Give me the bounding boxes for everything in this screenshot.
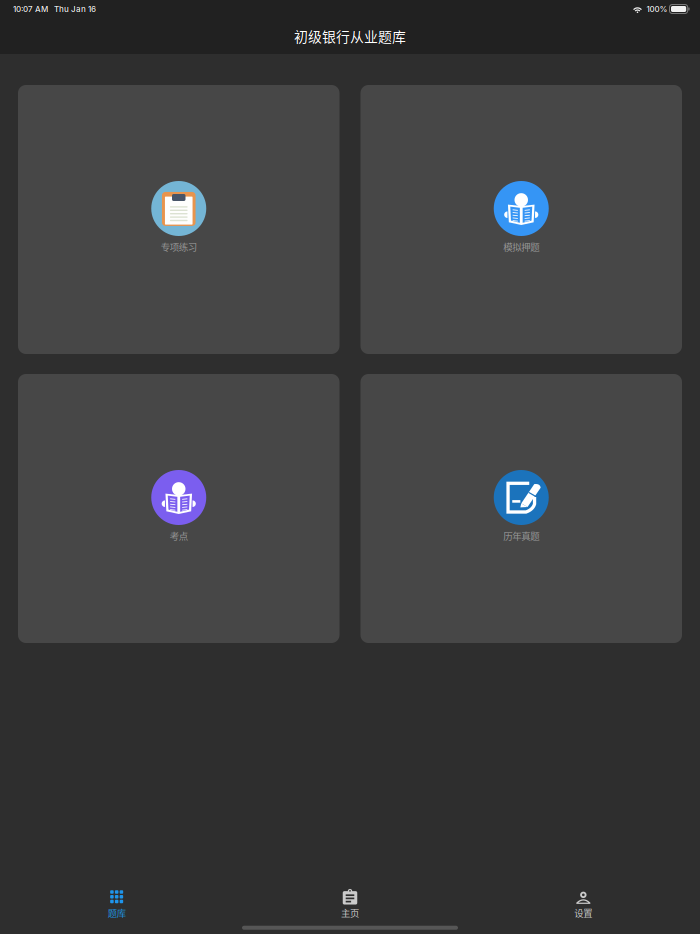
staticText: Thu Jan 16 [54,4,96,14]
button[interactable]: 模拟押题 [360,85,682,354]
staticText: 考点 [170,529,188,542]
staticText: 历年真题 [503,529,539,542]
staticText: 题库 [108,906,126,919]
button[interactable]: 考点 [18,374,339,643]
staticText: 初级银行从业题库 [294,26,406,46]
button[interactable]: 历年真题 [360,374,682,643]
button[interactable]: 题库 [0,883,233,918]
staticText: 主页 [341,906,359,919]
button[interactable]: 设置 [467,883,700,918]
button[interactable]: 主页 [233,883,467,918]
staticText: 模拟押题 [503,240,539,253]
staticText: 100% [646,4,667,14]
staticText: 设置 [574,906,592,919]
button[interactable]: 专项练习 [18,85,339,354]
staticText: 专项练习 [161,240,197,253]
staticText: 10:07 AM [13,4,48,14]
